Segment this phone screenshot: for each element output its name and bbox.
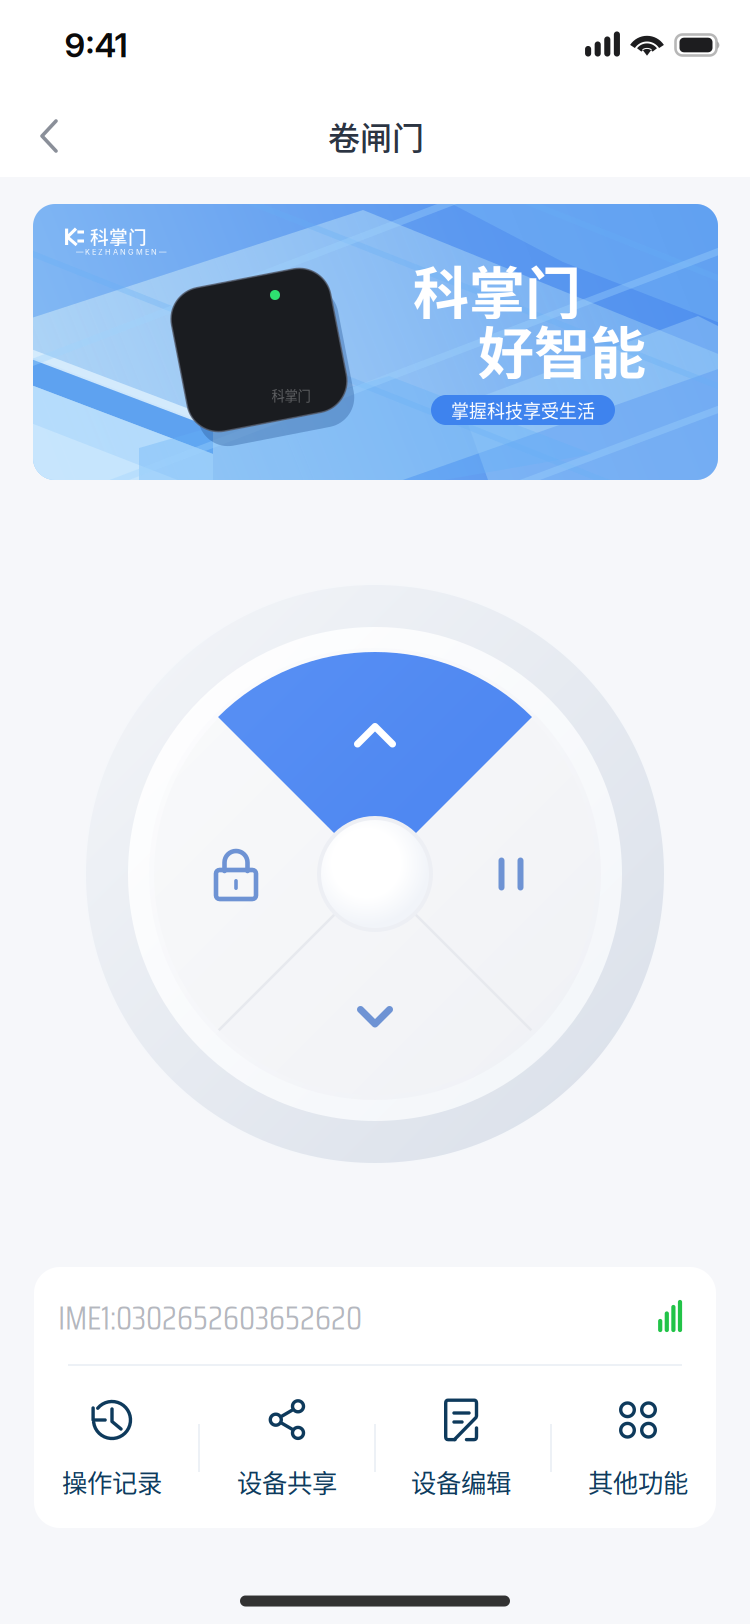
staticText: — K E Z H A N G M E N — (76, 247, 166, 256)
staticText: 科掌门 (271, 385, 310, 405)
staticText: 科掌门 (90, 222, 147, 249)
staticText: 科掌门 (413, 248, 581, 330)
button[interactable]: 设备共享 (202, 1398, 372, 1494)
staticText: 掌握科技享受生活 (451, 397, 595, 423)
staticText: 好智能 (478, 308, 646, 390)
button[interactable]: 其他功能 (553, 1398, 723, 1494)
staticText: 设备共享 (237, 1463, 337, 1500)
staticText: 9:41 (64, 25, 127, 65)
staticText: 设备编辑 (411, 1463, 511, 1500)
button[interactable]: 设备编辑 (376, 1398, 546, 1494)
staticText: 操作记录 (62, 1463, 162, 1500)
button[interactable]: 操作记录 (27, 1398, 197, 1494)
staticText: IME1:0302652603652620 (58, 1292, 362, 1344)
staticText: 其他功能 (588, 1463, 688, 1500)
button[interactable]: Back (18, 93, 106, 179)
staticText: 卷闸门 (328, 113, 424, 159)
